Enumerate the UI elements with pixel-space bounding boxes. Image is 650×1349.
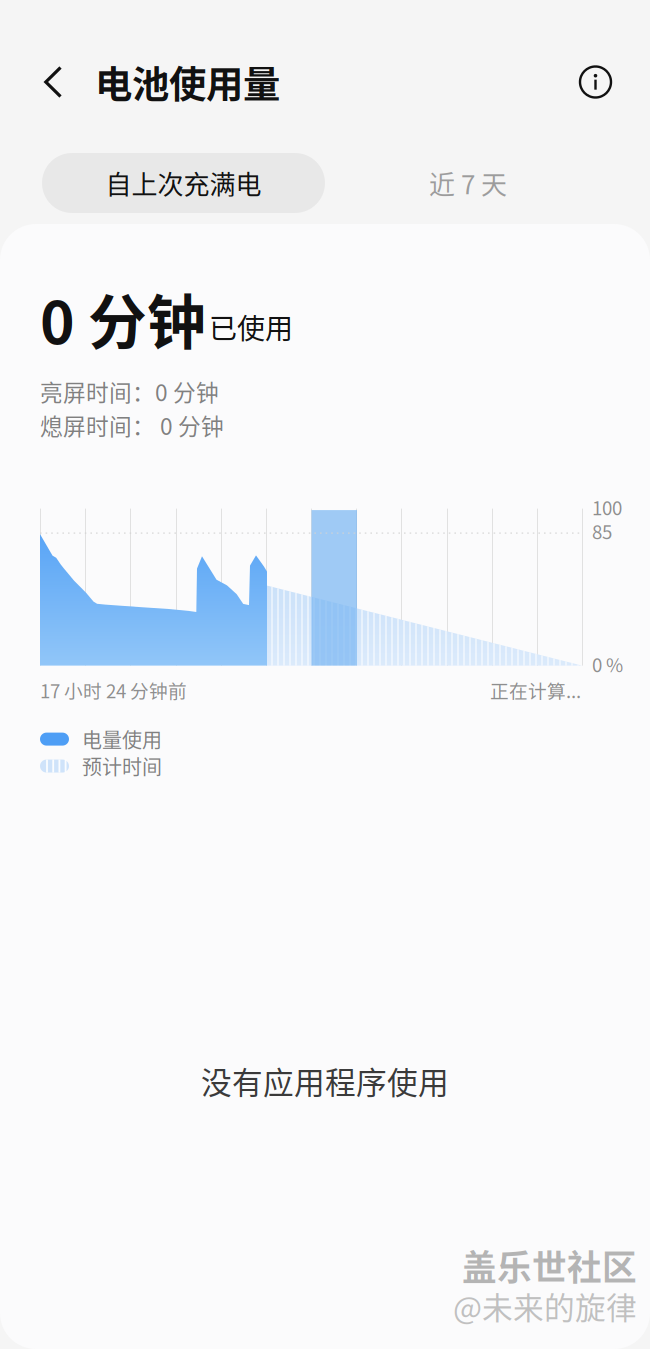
- staticText: @未来的旋律: [453, 1284, 637, 1328]
- staticText: 0 %: [592, 651, 623, 678]
- staticText: 电量使用: [82, 725, 162, 754]
- button[interactable]: 近 7 天: [325, 153, 611, 213]
- button[interactable]: Back: [0, 52, 95, 112]
- staticText: 熄屏时间： 0 分钟: [40, 409, 224, 442]
- button[interactable]: Information: [580, 52, 650, 111]
- staticText: 盖乐世社区: [462, 1240, 637, 1291]
- staticText: 近 7 天: [429, 164, 507, 202]
- staticText: 预计时间: [82, 752, 162, 781]
- staticText: 自上次充满电: [105, 164, 261, 202]
- staticText: 电池使用量: [95, 55, 280, 109]
- staticText: 亮屏时间：0 分钟: [40, 375, 219, 408]
- staticText: 正在计算...: [490, 677, 581, 704]
- staticText: 已使用: [209, 307, 293, 347]
- staticText: 0 分钟: [40, 276, 206, 361]
- button[interactable]: 自上次充满电: [42, 153, 325, 213]
- staticText: 没有应用程序使用: [201, 1058, 449, 1103]
- staticText: 17 小时 24 分钟前: [40, 677, 187, 704]
- staticText: 100: [592, 494, 622, 521]
- staticText: 85: [592, 518, 612, 545]
